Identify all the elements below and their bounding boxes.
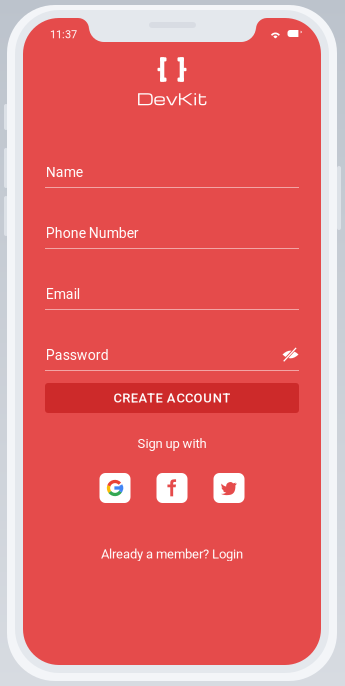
staticText: Password [46,347,109,363]
staticText: 11:37 [50,28,77,41]
button[interactable]: Password [23,325,321,386]
staticText: Already a member? Login [101,546,243,562]
button[interactable]: Sign up with Google [99,473,130,503]
staticText: Sign up with [137,436,206,451]
button[interactable]: Name [23,142,321,203]
staticText: Email [46,286,80,302]
staticText: Name [46,164,83,180]
button[interactable]: Already a member? Login [23,544,321,564]
staticText: Phone Number [46,225,139,241]
staticText: CREATE ACCOUNT [114,390,230,406]
button[interactable]: CREATE ACCOUNT [45,383,299,413]
button[interactable]: Email [23,264,321,325]
button[interactable]: Phone Number [23,203,321,264]
button[interactable]: Sign up with Facebook [156,473,187,503]
button[interactable]: Sign up with Twitter [213,473,244,503]
staticText: DevKit [136,87,207,109]
